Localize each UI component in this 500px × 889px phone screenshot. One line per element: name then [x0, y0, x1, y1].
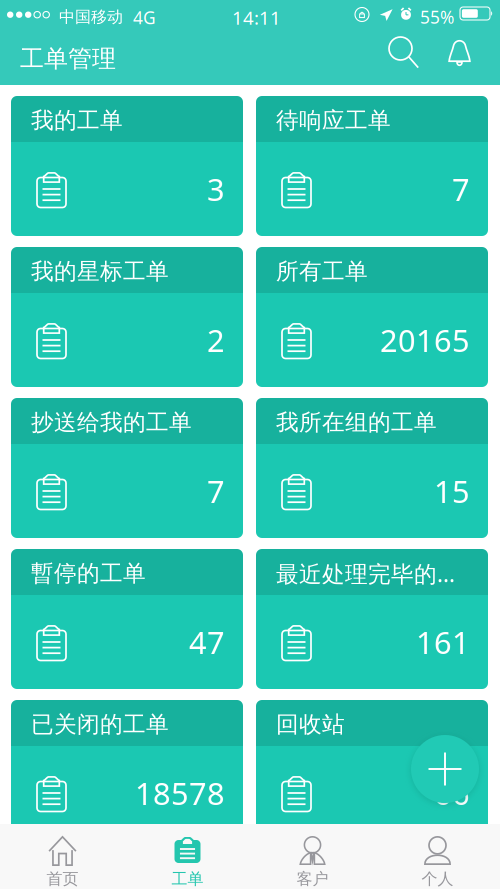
- staticText: 47: [189, 622, 225, 662]
- staticText: 工单: [171, 869, 203, 889]
- staticText: 55%: [420, 5, 454, 28]
- staticText: 我所在组的工单: [276, 409, 437, 436]
- button[interactable]: 个人: [375, 824, 500, 889]
- button[interactable]: 所有工单: [256, 247, 488, 387]
- button[interactable]: New work order: [411, 735, 479, 803]
- staticText: 我的工单: [31, 107, 123, 134]
- button[interactable]: 抄送给我的工单: [11, 398, 243, 538]
- staticText: 7: [207, 471, 225, 511]
- staticText: 2: [207, 320, 225, 360]
- button[interactable]: 客户: [250, 824, 375, 889]
- staticText: 首页: [46, 869, 78, 889]
- button[interactable]: 我的星标工单: [11, 247, 243, 387]
- staticText: 所有工单: [276, 258, 368, 285]
- staticText: 3: [207, 169, 225, 209]
- staticText: 客户: [296, 869, 328, 889]
- button[interactable]: 最近处理完毕的...: [256, 549, 488, 689]
- button[interactable]: 我所在组的工单: [256, 398, 488, 538]
- staticText: 个人: [421, 869, 453, 889]
- button[interactable]: Search: [389, 37, 433, 81]
- staticText: 待响应工单: [276, 107, 391, 134]
- staticText: 已关闭的工单: [31, 711, 169, 738]
- button[interactable]: 待响应工单: [256, 96, 488, 236]
- staticText: 66: [434, 773, 470, 813]
- staticText: 工单管理: [20, 44, 116, 73]
- staticText: 抄送给我的工单: [31, 409, 192, 436]
- button[interactable]: 回收站: [256, 700, 488, 840]
- staticText: 15: [434, 471, 470, 511]
- staticText: 回收站: [276, 711, 345, 738]
- staticText: 14:11: [232, 5, 281, 30]
- button[interactable]: 我的工单: [11, 96, 243, 236]
- staticText: 7: [452, 169, 470, 209]
- staticText: 4G: [133, 6, 156, 29]
- staticText: 中国移动: [59, 7, 123, 27]
- staticText: 161: [416, 622, 470, 662]
- button[interactable]: 暫停的工单: [11, 549, 243, 689]
- button[interactable]: 已关闭的工单: [11, 700, 243, 840]
- button[interactable]: 工单: [125, 824, 250, 889]
- button[interactable]: 首页: [0, 824, 125, 889]
- staticText: 我的星标工单: [31, 258, 169, 285]
- button[interactable]: Notifications: [446, 38, 490, 82]
- staticText: 暫停的工单: [31, 560, 146, 587]
- staticText: 最近处理完毕的...: [276, 558, 455, 588]
- staticText: 18578: [135, 773, 225, 813]
- staticText: 20165: [380, 320, 470, 360]
